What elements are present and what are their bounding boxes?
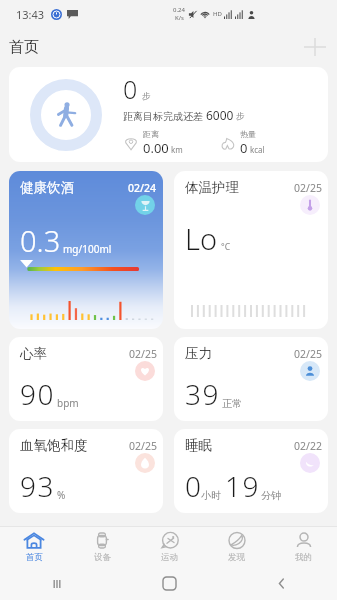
staticText: 健康饮酒 — [20, 179, 74, 196]
button[interactable]: 我的 — [270, 527, 337, 567]
button[interactable]: 睡眠 — [174, 429, 328, 513]
staticText: 发现 — [228, 552, 245, 563]
staticText: 02/22 — [294, 439, 322, 453]
staticText: 距离 — [143, 129, 159, 139]
staticText: bpm — [57, 396, 79, 410]
button[interactable]: 健康饮酒 — [9, 171, 163, 329]
button[interactable]: Add — [302, 34, 328, 60]
button[interactable]: Recent apps — [0, 567, 113, 600]
staticText: 02/24 — [128, 181, 157, 195]
button[interactable]: 设备 — [68, 527, 136, 567]
button[interactable]: 运动 — [136, 527, 203, 567]
button[interactable]: Home — [113, 567, 225, 600]
staticText: 0 — [123, 72, 138, 106]
staticText: 02/25 — [294, 347, 322, 361]
staticText: 首页 — [26, 552, 43, 563]
staticText: 正常 — [222, 397, 242, 410]
staticText: 02/25 — [129, 347, 157, 361]
staticText: 0 — [185, 467, 201, 505]
staticText: 热量 — [240, 129, 256, 139]
staticText: kcal — [250, 144, 265, 155]
staticText: 19 — [225, 467, 261, 505]
staticText: 0.00 — [143, 139, 169, 157]
staticText: 步 — [236, 111, 245, 122]
staticText: K/s — [175, 14, 184, 22]
staticText: 分钟 — [261, 489, 281, 502]
button[interactable]: 血氧饱和度 — [9, 429, 163, 513]
staticText: HD — [213, 10, 222, 18]
staticText: 02/25 — [129, 439, 157, 453]
staticText: 压力 — [185, 345, 212, 362]
staticText: 步 — [142, 91, 151, 102]
staticText: 6000 — [206, 107, 234, 123]
staticText: 运动 — [161, 552, 178, 563]
staticText: 93 — [20, 467, 56, 505]
button[interactable]: 心率 — [9, 337, 163, 421]
staticText: Lo — [185, 219, 218, 258]
staticText: 睡眠 — [185, 437, 212, 454]
staticText: km — [171, 144, 183, 155]
staticText: 13:43 — [16, 7, 45, 22]
staticText: °C — [221, 241, 231, 253]
staticText: 0.24 — [173, 6, 185, 14]
staticText: 小时 — [201, 489, 221, 502]
staticText: 血氧饱和度 — [20, 437, 88, 454]
staticText: 首页 — [9, 38, 39, 57]
button[interactable]: 压力 — [174, 337, 328, 421]
button[interactable]: 首页 — [0, 527, 68, 567]
staticText: 39 — [185, 375, 221, 413]
staticText: 我的 — [295, 552, 312, 563]
button[interactable]: 体温护理 — [174, 171, 328, 329]
button[interactable]: Back — [225, 567, 337, 600]
staticText: 0 — [240, 139, 248, 157]
staticText: % — [57, 488, 66, 502]
button[interactable]: 发现 — [203, 527, 270, 567]
staticText: 0.3 — [20, 221, 61, 260]
button[interactable]: 0 — [9, 67, 328, 162]
staticText: 心率 — [20, 345, 47, 362]
staticText: 90 — [20, 375, 56, 413]
staticText: 02/25 — [294, 181, 322, 195]
staticText: 体温护理 — [185, 179, 239, 196]
staticText: 设备 — [94, 552, 111, 563]
staticText: mg/100ml — [63, 242, 112, 256]
staticText: 距离目标完成还差 — [123, 110, 203, 123]
